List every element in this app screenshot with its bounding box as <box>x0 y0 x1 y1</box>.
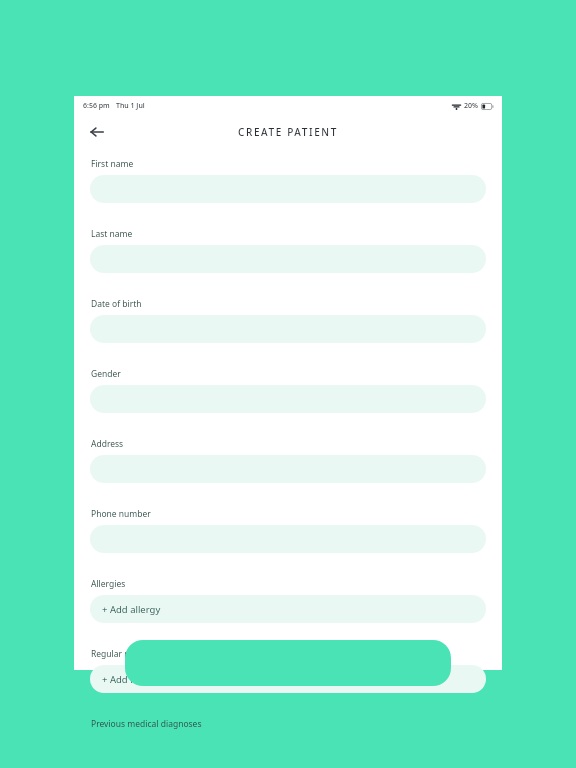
staticText: Phone number <box>91 508 151 520</box>
staticText: Allergies <box>91 578 126 590</box>
staticText: First name <box>91 158 134 170</box>
staticText: Regular medication <box>91 648 169 660</box>
staticText: Thu 1 Jul <box>116 101 145 111</box>
staticText: Address <box>91 438 124 450</box>
button[interactable]: + Add regular medications <box>90 665 486 693</box>
staticText: 20% <box>464 101 478 111</box>
staticText: Last name <box>91 228 133 240</box>
staticText: Date of birth <box>91 298 142 310</box>
button[interactable]: Back <box>82 117 112 147</box>
staticText: + Add regular medications <box>102 673 220 686</box>
button[interactable]: Save patient <box>125 640 451 686</box>
staticText: Previous medical diagnoses <box>91 718 202 730</box>
staticText: CREATE PATIENT <box>238 125 338 139</box>
staticText: 6:56 pm <box>83 101 110 111</box>
staticText: Gender <box>91 368 121 380</box>
button[interactable]: + Add allergy <box>90 595 486 623</box>
staticText: + Add allergy <box>102 603 161 616</box>
